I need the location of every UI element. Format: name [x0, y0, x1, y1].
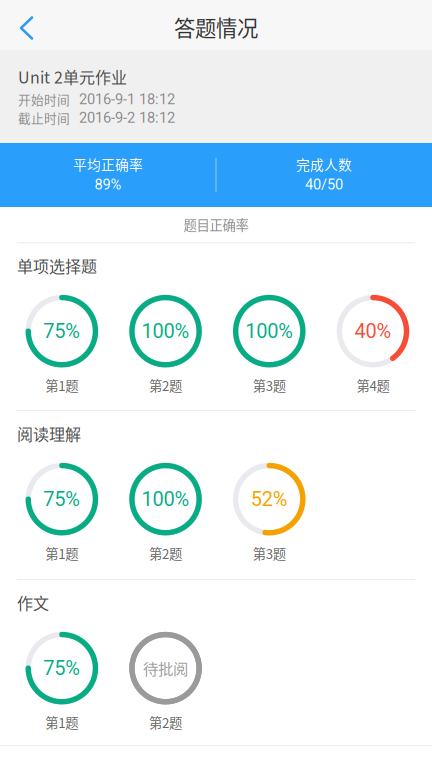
- button[interactable]: Back: [0, 0, 50, 50]
- staticText: 第2题: [149, 375, 182, 395]
- staticText: 2016-9-2 18:12: [79, 109, 175, 126]
- staticText: 完成人数: [296, 154, 352, 174]
- staticText: 第4题: [356, 375, 389, 395]
- staticText: 阅读理解: [17, 422, 81, 445]
- staticText: 第1题: [45, 543, 78, 563]
- staticText: 截止时间: [18, 108, 70, 127]
- staticText: 第1题: [45, 375, 78, 395]
- staticText: 答题情况: [174, 12, 258, 42]
- staticText: 开始时间: [18, 90, 70, 108]
- staticText: 第3题: [253, 375, 286, 395]
- staticText: 平均正确率: [73, 154, 143, 174]
- staticText: 100%: [245, 319, 293, 343]
- staticText: 第1题: [45, 712, 78, 732]
- staticText: 75%: [43, 487, 80, 511]
- staticText: 题目正确率: [183, 215, 248, 234]
- staticText: 89%: [94, 176, 121, 193]
- staticText: 2016-9-1 18:12: [79, 91, 175, 108]
- staticText: 40%: [354, 319, 391, 343]
- staticText: 100%: [142, 319, 190, 343]
- staticText: 作文: [17, 591, 49, 614]
- staticText: 第3题: [253, 543, 286, 563]
- staticText: 单项选择题: [17, 254, 97, 277]
- staticText: 40/50: [305, 176, 343, 193]
- staticText: 第2题: [149, 712, 182, 732]
- staticText: 52%: [251, 487, 288, 511]
- staticText: 100%: [142, 487, 190, 511]
- staticText: Unit 2单元作业: [18, 65, 127, 88]
- staticText: 第2题: [149, 543, 182, 563]
- staticText: 75%: [43, 656, 80, 680]
- staticText: 75%: [43, 319, 80, 343]
- staticText: 待批阅: [143, 657, 188, 679]
